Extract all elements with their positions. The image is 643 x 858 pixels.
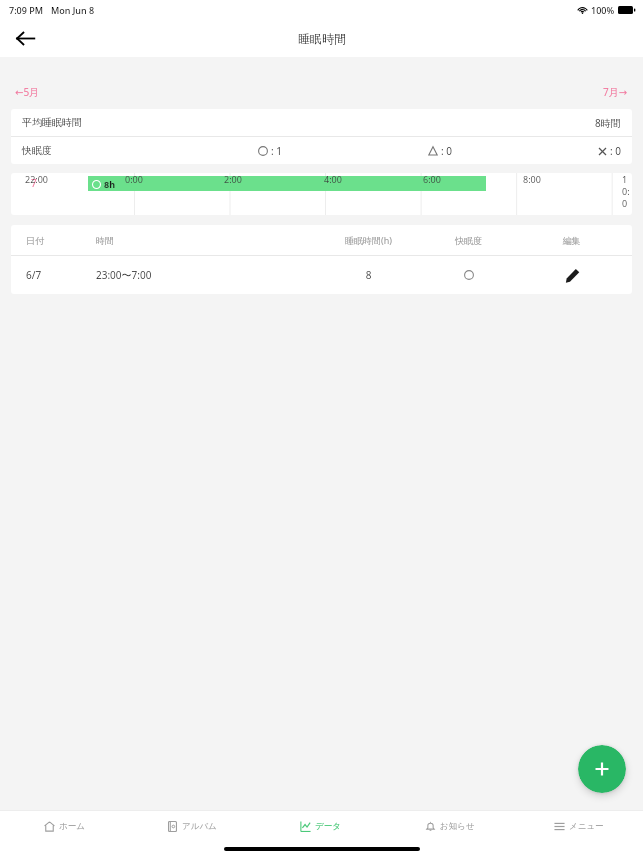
button[interactable]: アルバム xyxy=(128,810,256,842)
staticText: ←5月 xyxy=(15,85,40,99)
staticText: アルバム xyxy=(182,821,217,832)
button[interactable]: 6/7 xyxy=(11,256,632,294)
staticText: 22:00 xyxy=(25,173,49,185)
button[interactable]: データ xyxy=(256,810,385,842)
staticText: 6:00 xyxy=(423,173,441,185)
staticText: Mon Jun 8 xyxy=(51,4,95,16)
staticText: 7月→ xyxy=(603,85,628,99)
staticText: メニュー xyxy=(569,821,604,832)
staticText: 0:00 xyxy=(125,173,143,185)
staticText: : 0 xyxy=(441,144,452,158)
staticText: データ xyxy=(315,821,341,832)
staticText: : 0 xyxy=(610,144,621,158)
button[interactable]: Add sleep record xyxy=(578,745,626,793)
button[interactable]: お知らせ xyxy=(385,810,514,842)
staticText: 6/7 xyxy=(26,268,96,282)
staticText: 8h xyxy=(104,178,115,190)
staticText: 23:00〜7:00 xyxy=(96,268,311,282)
staticText: 7 xyxy=(31,176,37,190)
staticText: お知らせ xyxy=(440,821,475,832)
staticText: 2:00 xyxy=(224,173,242,185)
staticText: 編集 xyxy=(511,235,632,246)
button[interactable]: メニュー xyxy=(514,810,643,842)
staticText: 日付 xyxy=(26,235,96,246)
staticText: 8:00 xyxy=(523,173,541,185)
staticText: 8時間 xyxy=(595,116,621,130)
staticText: 4:00 xyxy=(324,173,342,185)
button[interactable]: Edit xyxy=(559,262,585,288)
staticText: 睡眠時間(h) xyxy=(311,234,426,246)
staticText: 8 xyxy=(311,268,426,282)
button[interactable]: 8h xyxy=(88,176,486,191)
staticText: 睡眠時間 xyxy=(298,31,346,46)
staticText: 100% xyxy=(591,4,615,16)
staticText: 7:09 PM xyxy=(9,4,43,16)
button[interactable]: ←5月 xyxy=(13,83,42,101)
staticText: 快眠度 xyxy=(22,144,52,157)
staticText: 時間 xyxy=(96,235,311,246)
staticText: 10:00 xyxy=(622,173,632,211)
button[interactable]: 7月→ xyxy=(601,83,630,101)
staticText: 平均睡眠時間 xyxy=(22,116,82,129)
button[interactable]: ホーム xyxy=(0,810,128,842)
button[interactable]: Back xyxy=(5,19,45,57)
staticText: : 1 xyxy=(271,144,282,158)
staticText: ホーム xyxy=(59,821,85,832)
staticText: 快眠度 xyxy=(426,235,511,246)
